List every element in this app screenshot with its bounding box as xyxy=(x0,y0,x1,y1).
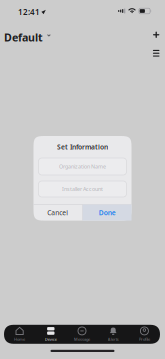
staticText: Default xyxy=(4,30,43,44)
button[interactable]: Alerts xyxy=(98,325,129,344)
staticText: 12:41 xyxy=(18,7,40,17)
staticText: Home xyxy=(14,337,25,342)
button[interactable]: Device xyxy=(35,325,66,344)
staticText: Set Information xyxy=(57,143,108,151)
button[interactable]: Menu xyxy=(147,44,165,63)
button[interactable]: Default xyxy=(0,17,55,48)
staticText: Organization Name xyxy=(59,163,106,170)
button[interactable]: Add xyxy=(147,26,165,44)
button[interactable]: Cancel xyxy=(33,205,82,221)
staticText: Cancel xyxy=(47,208,68,217)
button[interactable]: Done xyxy=(83,205,131,221)
button[interactable]: Home xyxy=(4,325,35,344)
staticText: Device xyxy=(45,337,57,342)
staticText: Alerts xyxy=(108,337,119,342)
staticText: Profile xyxy=(139,337,150,342)
staticText: Done xyxy=(99,208,116,217)
button[interactable]: Profile xyxy=(129,325,160,344)
staticText: Message xyxy=(74,337,90,342)
button[interactable]: Message xyxy=(66,325,98,344)
staticText: Installer Account xyxy=(62,185,103,193)
